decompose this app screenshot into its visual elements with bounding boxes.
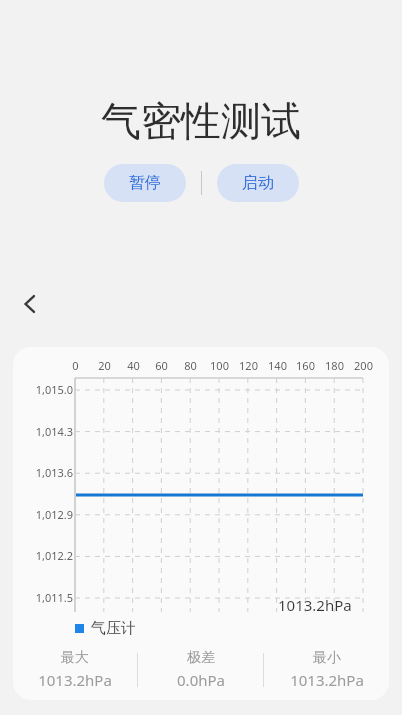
button[interactable]: 最小 <box>264 647 389 692</box>
staticText: 0 <box>72 358 79 373</box>
staticText: 140 <box>268 358 287 373</box>
button[interactable]: 极差 <box>138 647 263 692</box>
staticText: 气密性测试 <box>101 96 301 146</box>
staticText: 最大 <box>61 649 89 667</box>
staticText: 1,014.3 <box>35 424 73 439</box>
staticText: 1,012.2 <box>35 548 73 563</box>
staticText: 极差 <box>187 649 215 667</box>
staticText: 1,015.0 <box>35 382 73 397</box>
staticText: 1013.2hPa <box>278 595 352 615</box>
staticText: 100 <box>210 358 229 373</box>
staticText: 启动 <box>242 173 274 193</box>
staticText: 120 <box>239 358 258 373</box>
staticText: 0.0hPa <box>177 670 225 690</box>
staticText: 1,012.9 <box>35 507 73 522</box>
button[interactable]: Back <box>8 282 52 326</box>
button[interactable]: 暂停 <box>104 164 186 202</box>
staticText: 1013.2hPa <box>38 670 112 690</box>
button[interactable]: 启动 <box>217 164 299 202</box>
staticText: 气压计 <box>91 619 136 638</box>
staticText: 180 <box>325 358 344 373</box>
staticText: 160 <box>296 358 315 373</box>
button[interactable]: 最大 <box>13 647 137 692</box>
staticText: 80 <box>184 358 197 373</box>
staticText: 60 <box>155 358 168 373</box>
staticText: 20 <box>98 358 111 373</box>
staticText: 1,013.6 <box>35 465 73 480</box>
staticText: 1013.2hPa <box>290 670 364 690</box>
staticText: 200 <box>354 358 373 373</box>
staticText: 40 <box>127 358 140 373</box>
staticText: 暂停 <box>129 173 161 193</box>
staticText: 最小 <box>313 649 341 667</box>
staticText: 1,011.5 <box>35 590 73 605</box>
